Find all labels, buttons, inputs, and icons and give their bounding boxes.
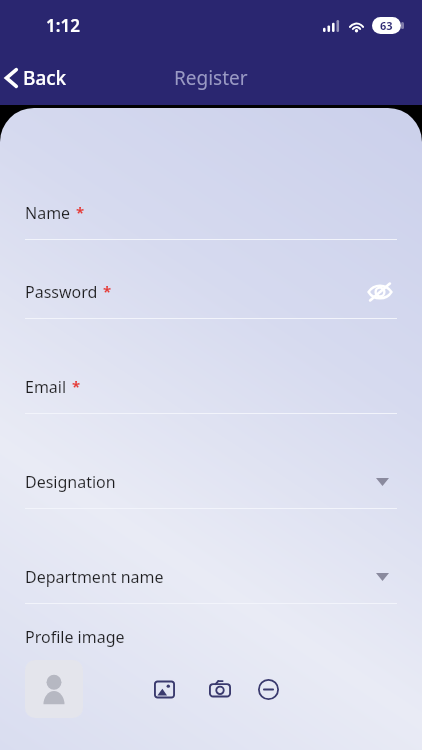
button[interactable]: Open Department name options bbox=[367, 564, 397, 590]
button[interactable]: Department name bbox=[0, 564, 422, 604]
staticText: Register bbox=[174, 65, 248, 91]
staticText: * bbox=[103, 281, 112, 301]
staticText: Department name bbox=[25, 566, 164, 588]
button[interactable]: Name bbox=[0, 200, 422, 240]
button[interactable]: Designation bbox=[0, 469, 422, 509]
staticText: Designation bbox=[25, 471, 116, 493]
button[interactable]: Show password bbox=[363, 279, 397, 305]
button[interactable]: Profile photo bbox=[25, 660, 83, 718]
button[interactable]: Pick from gallery bbox=[145, 670, 183, 708]
staticText: Email bbox=[25, 376, 67, 398]
staticText: Password bbox=[25, 281, 98, 303]
staticText: Profile image bbox=[25, 626, 125, 648]
staticText: * bbox=[72, 376, 81, 396]
button[interactable]: Email bbox=[0, 374, 422, 414]
button[interactable]: Password bbox=[0, 279, 422, 319]
button[interactable]: Open Designation options bbox=[367, 469, 397, 495]
button[interactable]: Remove photo bbox=[249, 670, 287, 708]
staticText: 63 bbox=[380, 18, 393, 33]
staticText: Name bbox=[25, 202, 71, 224]
staticText: * bbox=[76, 202, 85, 222]
staticText: 1:12 bbox=[46, 14, 80, 37]
button[interactable]: Take photo bbox=[201, 670, 239, 708]
button[interactable]: Back bbox=[0, 59, 77, 97]
staticText: Back bbox=[23, 65, 67, 91]
